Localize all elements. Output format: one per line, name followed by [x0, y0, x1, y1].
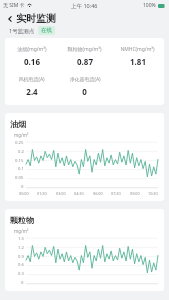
staticText: 0.16 — [24, 56, 40, 67]
staticText: 0.25 — [15, 140, 24, 146]
staticText: NMHC(mg/m³) — [120, 46, 155, 53]
staticText: 01:30 — [37, 191, 47, 196]
staticText: 0.6 — [18, 262, 24, 268]
button[interactable]: Back — [4, 13, 16, 25]
staticText: 实时监测 — [16, 12, 56, 25]
staticText: 0.15 — [15, 158, 24, 164]
staticText: 上午 10:46 — [71, 2, 98, 10]
staticText: 油烟 — [10, 119, 26, 129]
staticText: 1.5 — [18, 236, 24, 242]
staticText: 00:00 — [19, 191, 29, 196]
staticText: 0 — [21, 280, 24, 286]
staticText: 0.87 — [77, 56, 93, 67]
staticText: 07:30 — [111, 191, 121, 196]
staticText: 0.3 — [18, 271, 24, 277]
staticText: 06:00 — [93, 191, 103, 196]
staticText: 10:30 — [148, 191, 158, 196]
staticText: mg/m³ — [14, 228, 29, 234]
staticText: 净化器电流(A) — [69, 76, 101, 83]
staticText: 100% — [143, 2, 156, 9]
button[interactable]: 油烟 — [5, 113, 164, 201]
staticText: mg/m³ — [14, 132, 29, 138]
staticText: 0 — [82, 86, 87, 97]
staticText: 1.81 — [130, 56, 146, 67]
staticText: 0 — [21, 184, 24, 190]
staticText: 0.05 — [15, 175, 24, 181]
staticText: 颗粒物(mg/m³) — [67, 46, 102, 53]
staticText: 03:00 — [56, 191, 66, 196]
staticText: 油烟(mg/m³) — [17, 46, 47, 53]
staticText: 2.4 — [26, 86, 38, 97]
staticText: 在线 — [41, 27, 52, 34]
staticText: 0.9 — [18, 254, 24, 260]
staticText: 09:00 — [130, 191, 140, 196]
button[interactable]: 在线 — [38, 26, 55, 35]
staticText: 风机电流(A) — [18, 76, 45, 83]
staticText: 0.1 — [18, 166, 24, 172]
staticText: 04:30 — [74, 191, 84, 196]
staticText: 无 SIM 卡 — [3, 2, 25, 9]
button[interactable]: 颗粒物 — [5, 209, 164, 291]
staticText: 1号监测点 — [9, 27, 35, 35]
staticText: 颗粒物 — [10, 215, 34, 225]
button[interactable]: 油烟(mg/m³) — [5, 38, 164, 105]
staticText: 1.2 — [18, 245, 24, 251]
staticText: 0.2 — [18, 149, 24, 155]
